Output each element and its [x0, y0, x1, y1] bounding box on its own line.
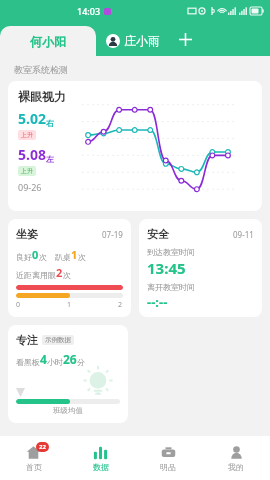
staticText: 09-26	[18, 181, 42, 193]
staticText: 26	[63, 351, 77, 367]
staticText: 到达教室时间	[147, 247, 195, 257]
button[interactable]: 我的	[202, 436, 270, 480]
staticText: 我的	[228, 462, 244, 472]
staticText: 小时	[47, 357, 63, 367]
staticText: 分	[77, 357, 85, 367]
button[interactable]: 明品	[134, 436, 202, 480]
staticText: 5.02	[18, 109, 46, 128]
staticText: 右	[46, 118, 54, 128]
staticText: 次	[63, 270, 71, 280]
staticText: 5.08	[18, 145, 46, 164]
staticText: 裸眼视力	[18, 89, 66, 104]
staticText: 左	[46, 154, 54, 164]
staticText: 数据	[93, 462, 109, 472]
button[interactable]: Add	[176, 30, 194, 48]
staticText: 良好	[16, 252, 32, 262]
staticText: 14:03	[77, 5, 101, 17]
staticText: 专注	[16, 333, 38, 347]
staticText: 离开教室时间	[147, 282, 195, 292]
staticText: 次	[78, 252, 86, 262]
staticText: 教室系统检测	[14, 64, 68, 75]
staticText: 明品	[160, 462, 176, 472]
staticText: 09-11	[233, 229, 254, 240]
staticText: 22	[39, 443, 46, 451]
staticText: 1	[71, 247, 78, 262]
staticText: 2	[118, 300, 123, 309]
button[interactable]: 庄小雨	[106, 33, 160, 48]
button[interactable]: 22	[0, 436, 67, 480]
button[interactable]: 裸眼视力	[8, 81, 262, 211]
button[interactable]: 专注	[8, 325, 128, 423]
staticText: 07-19	[102, 229, 123, 240]
staticText: 上升	[21, 167, 33, 175]
staticText: 庄小雨	[124, 33, 160, 48]
staticText: 0	[32, 247, 39, 262]
staticText: 看黑板	[16, 357, 40, 367]
staticText: 首页	[26, 462, 42, 472]
staticText: 何小阳	[30, 34, 66, 49]
staticText: 0	[16, 300, 21, 309]
button[interactable]: 安全	[139, 219, 262, 317]
staticText: 次	[39, 252, 47, 262]
staticText: 4	[40, 351, 47, 367]
staticText: --:--	[147, 293, 168, 309]
staticText: 13:45	[147, 258, 186, 278]
staticText: 坐姿	[16, 227, 38, 241]
button[interactable]: 数据	[67, 436, 134, 480]
staticText: 近距离用眼	[16, 270, 56, 280]
staticText: 上升	[21, 131, 33, 139]
staticText: 示例数据	[45, 336, 71, 344]
button[interactable]: 何小阳	[0, 26, 96, 56]
button[interactable]: 坐姿	[8, 219, 131, 317]
staticText: 1	[67, 300, 72, 309]
staticText: 安全	[147, 227, 169, 241]
staticText: 2	[56, 265, 63, 280]
staticText: 班级均值	[16, 406, 120, 415]
staticText: 趴桌	[55, 252, 71, 262]
